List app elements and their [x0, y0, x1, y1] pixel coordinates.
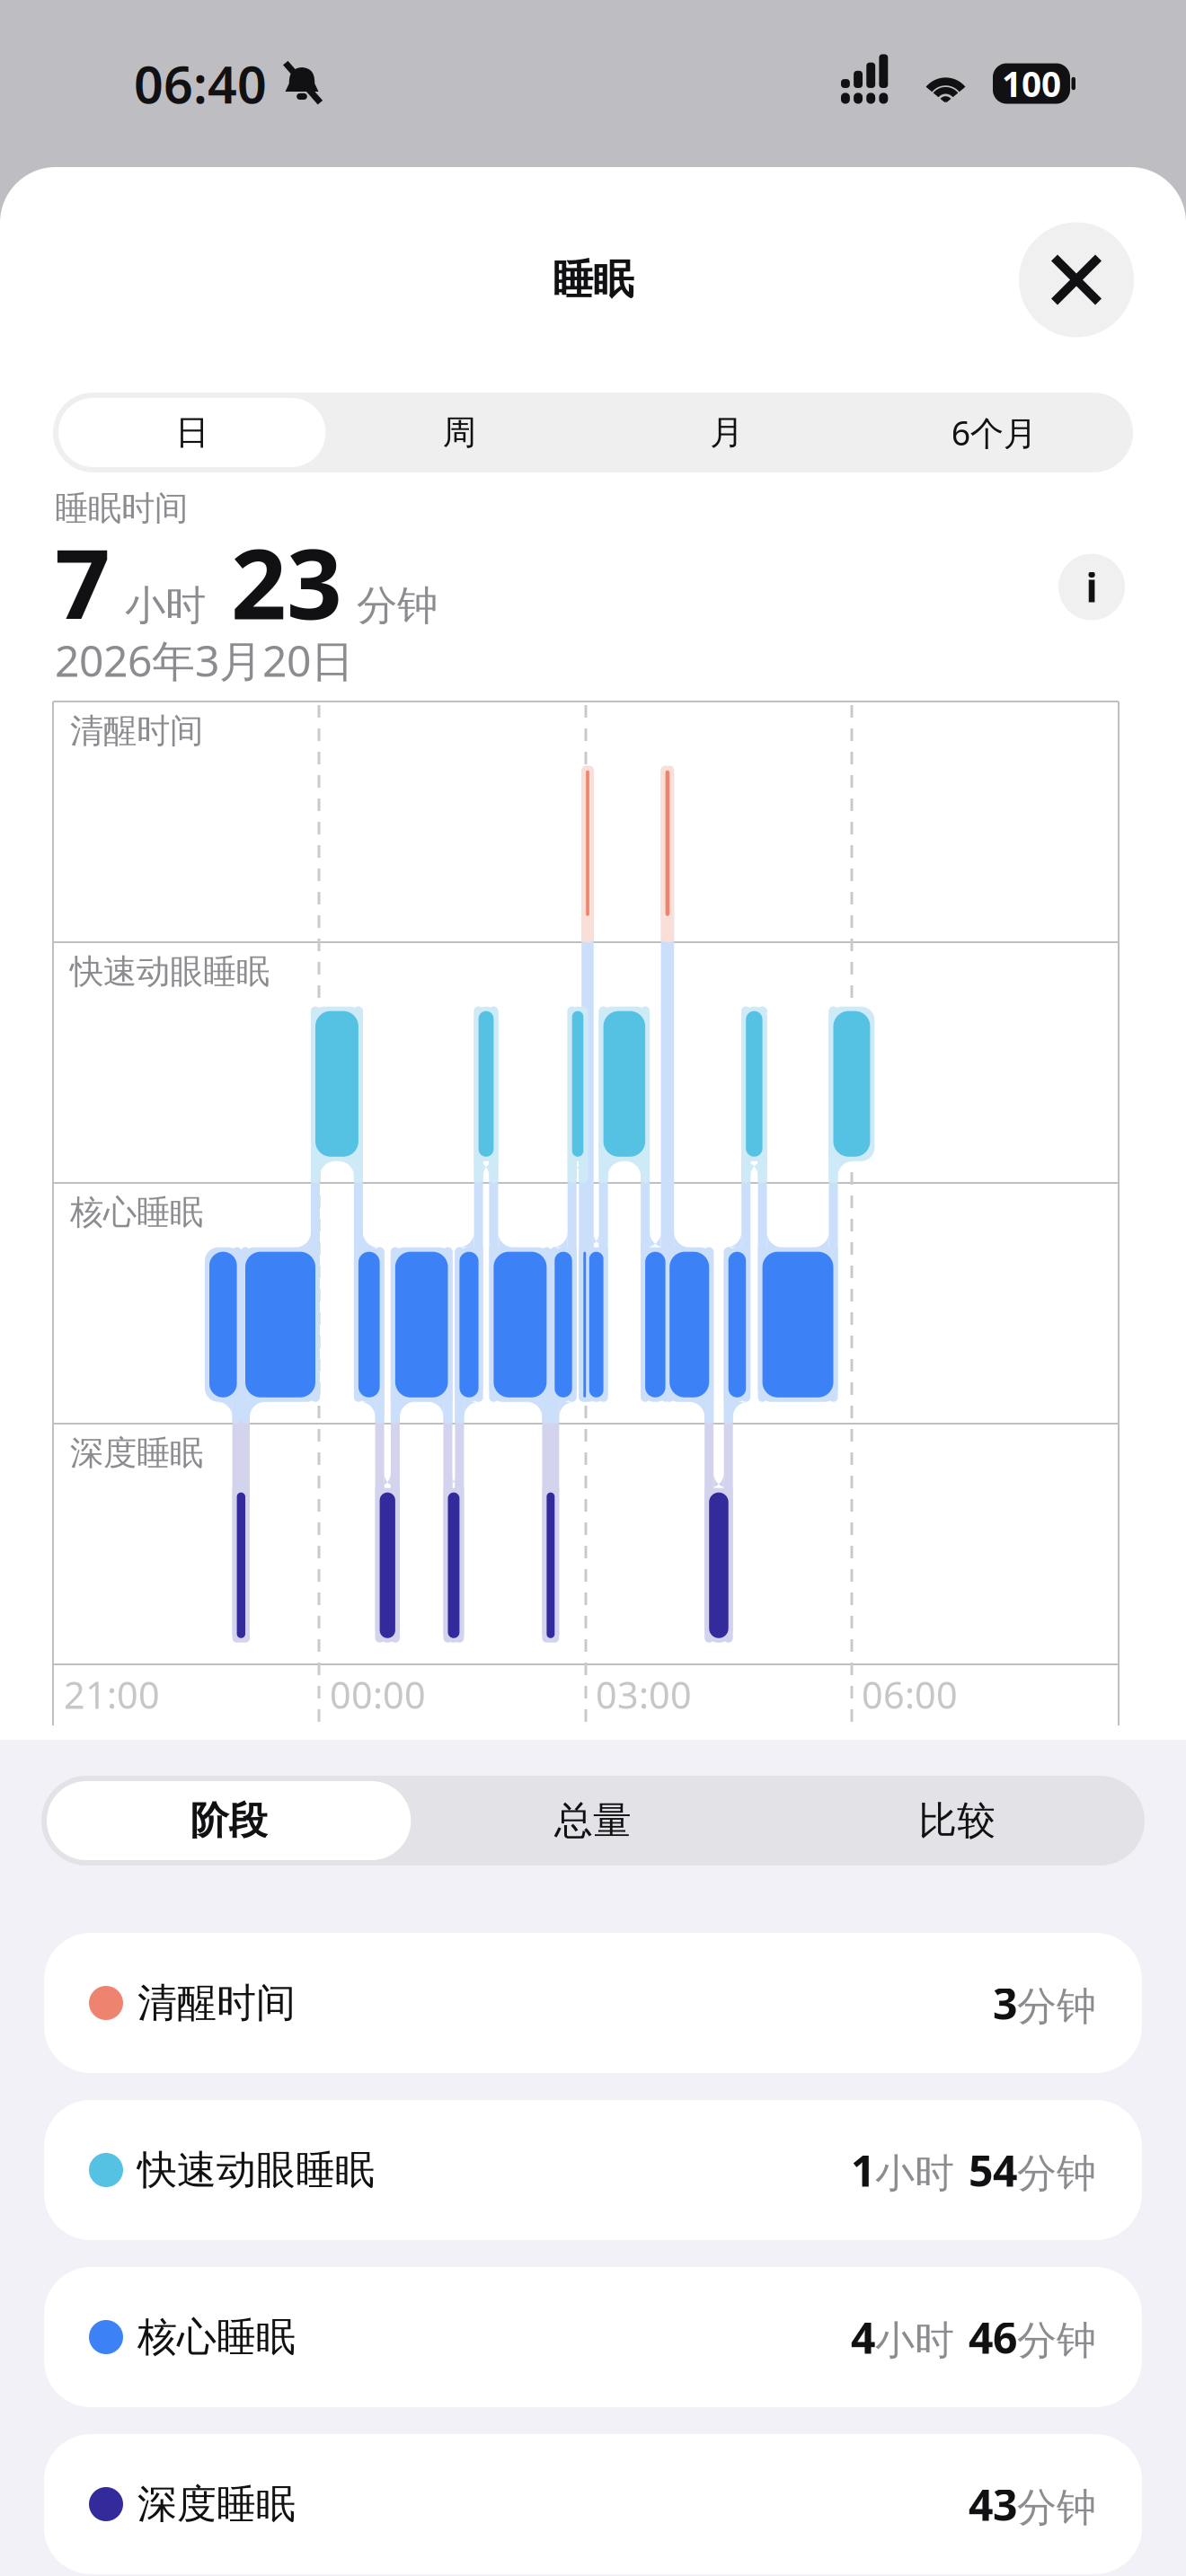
- staticText: 比较: [919, 1797, 996, 1844]
- button[interactable]: 深度睡眠: [44, 2434, 1142, 2574]
- button[interactable]: 关闭: [1019, 222, 1134, 337]
- staticText: 43: [969, 2475, 1017, 2533]
- staticText: 分钟: [357, 581, 438, 631]
- staticText: 54: [969, 2141, 1017, 2199]
- staticText: 06:00: [862, 1670, 958, 1719]
- button[interactable]: 日: [58, 398, 326, 467]
- staticText: 快速动眼睡眠: [70, 951, 270, 992]
- staticText: 清醒时间: [137, 1979, 296, 2027]
- staticText: 分钟: [1017, 1982, 1096, 2031]
- staticText: 快速动眼睡眠: [137, 2146, 375, 2194]
- staticText: 分钟: [1017, 2483, 1096, 2532]
- staticText: 核心睡眠: [137, 2313, 296, 2361]
- staticText: 周: [443, 412, 476, 453]
- staticText: 23: [231, 517, 342, 646]
- staticText: 核心睡眠: [70, 1192, 203, 1233]
- staticText: 小时: [875, 2316, 954, 2365]
- staticText: 6个月: [951, 410, 1037, 455]
- button[interactable]: 信息: [1058, 554, 1125, 620]
- staticText: 06:40: [134, 49, 267, 118]
- button[interactable]: 核心睡眠: [44, 2267, 1142, 2407]
- staticText: 总量: [554, 1797, 632, 1844]
- staticText: 睡眠: [553, 255, 633, 305]
- staticText: 阶段: [190, 1797, 267, 1844]
- staticText: 小时: [125, 581, 206, 631]
- button[interactable]: 清醒时间: [44, 1933, 1142, 2073]
- staticText: 46: [969, 2308, 1017, 2366]
- button[interactable]: 比较: [775, 1781, 1139, 1860]
- staticText: 1: [851, 2141, 875, 2199]
- staticText: 深度睡眠: [70, 1433, 203, 1474]
- staticText: 月: [710, 412, 743, 453]
- button[interactable]: 周: [326, 398, 593, 467]
- button[interactable]: 阶段: [47, 1781, 411, 1860]
- staticText: 7: [55, 517, 111, 646]
- staticText: 清醒时间: [70, 710, 203, 752]
- staticText: 03:00: [596, 1670, 692, 1719]
- staticText: i: [1086, 561, 1097, 613]
- staticText: 4: [851, 2308, 875, 2366]
- staticText: 分钟: [1017, 2316, 1096, 2365]
- staticText: 2026年3月20日: [55, 632, 354, 689]
- button[interactable]: 总量: [411, 1781, 775, 1860]
- button[interactable]: 月: [593, 398, 860, 467]
- staticText: 深度睡眠: [137, 2480, 296, 2528]
- staticText: 分钟: [1017, 2149, 1096, 2198]
- staticText: 100: [1002, 60, 1061, 107]
- staticText: 3: [993, 1974, 1017, 2032]
- button[interactable]: 6个月: [860, 398, 1128, 467]
- staticText: 日: [175, 412, 209, 453]
- staticText: 小时: [875, 2149, 954, 2198]
- staticText: 21:00: [64, 1670, 160, 1719]
- staticText: 00:00: [330, 1670, 426, 1719]
- staticText: 睡眠时间: [55, 488, 188, 529]
- button[interactable]: 快速动眼睡眠: [44, 2100, 1142, 2240]
